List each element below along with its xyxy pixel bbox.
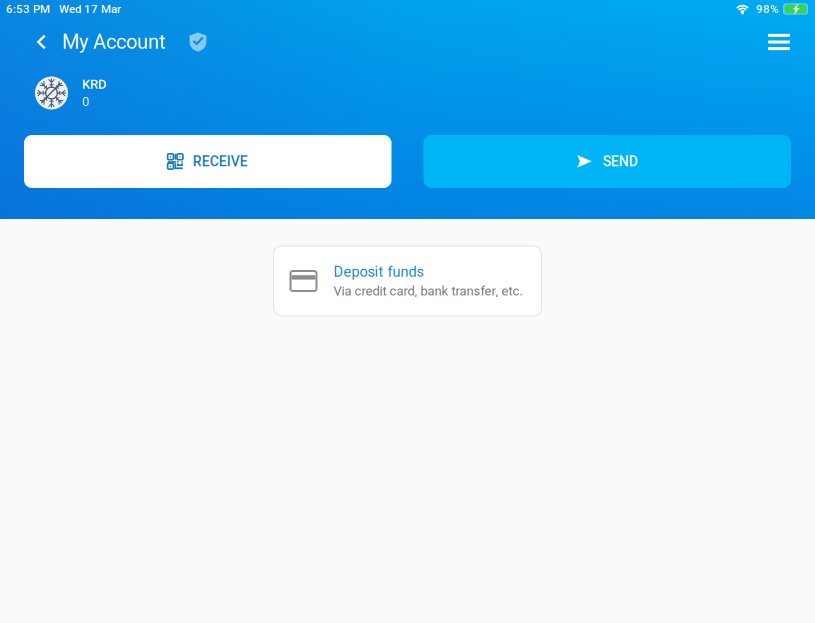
staticText: SEND — [603, 153, 638, 170]
button[interactable]: Back — [20, 22, 62, 62]
staticText: 6:53 PM — [6, 2, 50, 16]
button[interactable]: SEND — [423, 135, 791, 188]
staticText: 0 — [82, 94, 89, 109]
staticText: RECEIVE — [193, 153, 248, 170]
button[interactable]: RECEIVE — [24, 135, 391, 188]
staticText: Deposit funds — [333, 263, 423, 280]
staticText: 98% — [756, 2, 778, 16]
button[interactable]: Deposit funds — [273, 246, 541, 316]
staticText: KRD — [82, 77, 106, 92]
button[interactable]: Menu — [757, 22, 801, 62]
staticText: Wed 17 Mar — [59, 2, 121, 16]
staticText: My Account — [62, 30, 166, 54]
staticText: Via credit card, bank transfer, etc. — [333, 283, 522, 299]
